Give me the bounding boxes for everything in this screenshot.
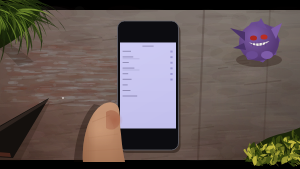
button[interactable]: Phone on wooden desk xyxy=(0,10,300,160)
